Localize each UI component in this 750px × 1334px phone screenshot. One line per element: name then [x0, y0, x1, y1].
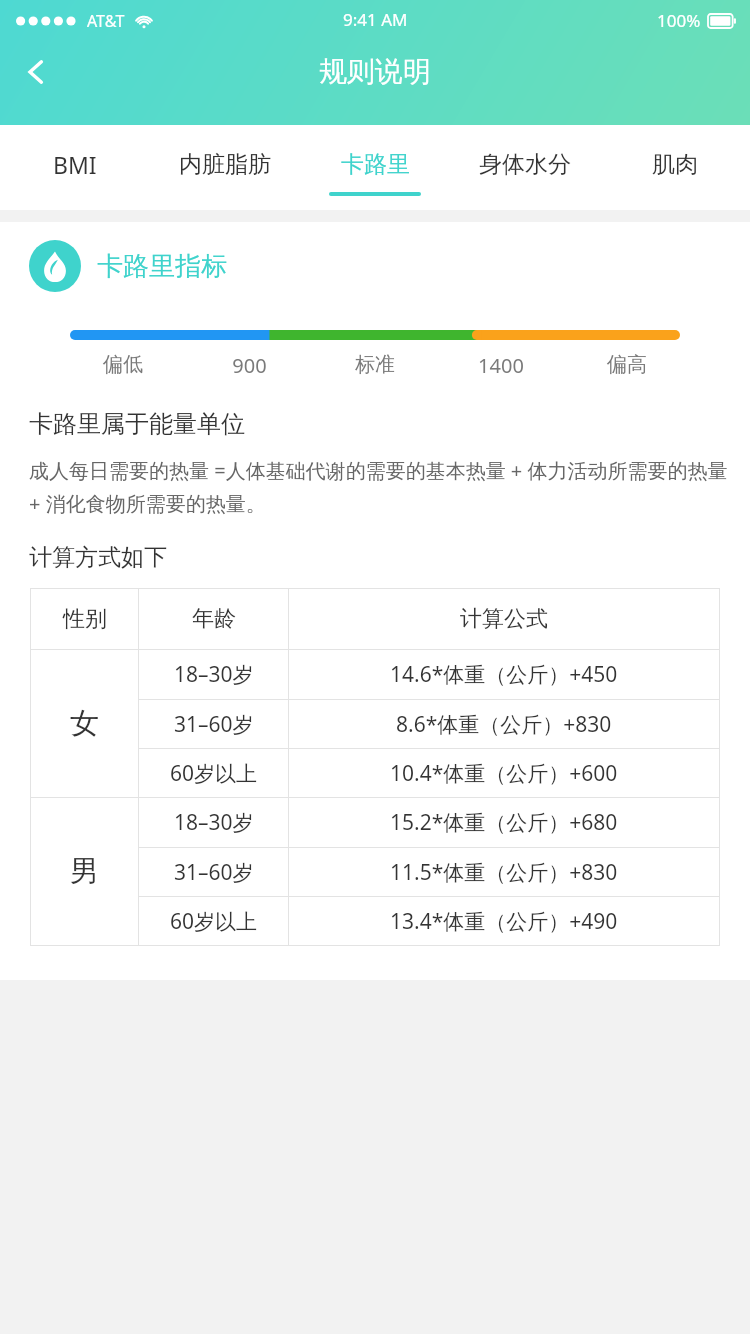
staticText: 计算方式如下	[29, 543, 167, 572]
staticText: 计算公式	[460, 605, 548, 633]
staticText: 900	[232, 352, 267, 379]
staticText: 60岁以上	[170, 759, 258, 788]
staticText: 成人每日需要的热量 =人体基础代谢的需要的基本热量 + 体力活动所需要的热量 +…	[29, 457, 728, 517]
button[interactable]: 内脏脂肪	[150, 125, 300, 210]
staticText: 14.6*体重（公斤）+450	[390, 660, 618, 689]
staticText: 年龄	[192, 605, 236, 633]
staticText: 31–60岁	[174, 858, 254, 887]
staticText: 18–30岁	[174, 808, 254, 837]
staticText: 9:41 AM	[343, 8, 408, 31]
staticText: 卡路里属于能量单位	[29, 409, 245, 439]
staticText: 11.5*体重（公斤）+830	[390, 858, 618, 887]
staticText: 身体水分	[479, 150, 571, 179]
button[interactable]: 肌肉	[600, 125, 750, 210]
staticText: 18–30岁	[174, 660, 254, 689]
staticText: 性别	[63, 605, 107, 633]
staticText: 男	[70, 853, 99, 890]
staticText: 31–60岁	[174, 710, 254, 739]
staticText: BMI	[53, 149, 97, 180]
staticText: 8.6*体重（公斤）+830	[396, 710, 612, 739]
button[interactable]: 身体水分	[450, 125, 600, 210]
staticText: 10.4*体重（公斤）+600	[390, 759, 618, 788]
staticText: 标准	[355, 352, 395, 377]
staticText: 15.2*体重（公斤）+680	[390, 808, 618, 837]
staticText: 偏高	[607, 352, 647, 377]
staticText: 100%	[657, 9, 701, 32]
staticText: AT&T	[87, 10, 125, 32]
staticText: 13.4*体重（公斤）+490	[390, 907, 618, 936]
button[interactable]: 卡路里	[300, 125, 450, 210]
staticText: 内脏脂肪	[179, 150, 271, 179]
staticText: 卡路里指标	[97, 250, 227, 283]
staticText: 规则说明	[319, 54, 431, 89]
staticText: 女	[70, 705, 99, 742]
staticText: 肌肉	[652, 150, 698, 179]
staticText: 1400	[478, 352, 524, 379]
button[interactable]: Back	[8, 44, 64, 100]
staticText: 60岁以上	[170, 907, 258, 936]
staticText: 卡路里	[341, 150, 410, 179]
staticText: 偏低	[103, 352, 143, 377]
button[interactable]: BMI	[0, 125, 150, 210]
